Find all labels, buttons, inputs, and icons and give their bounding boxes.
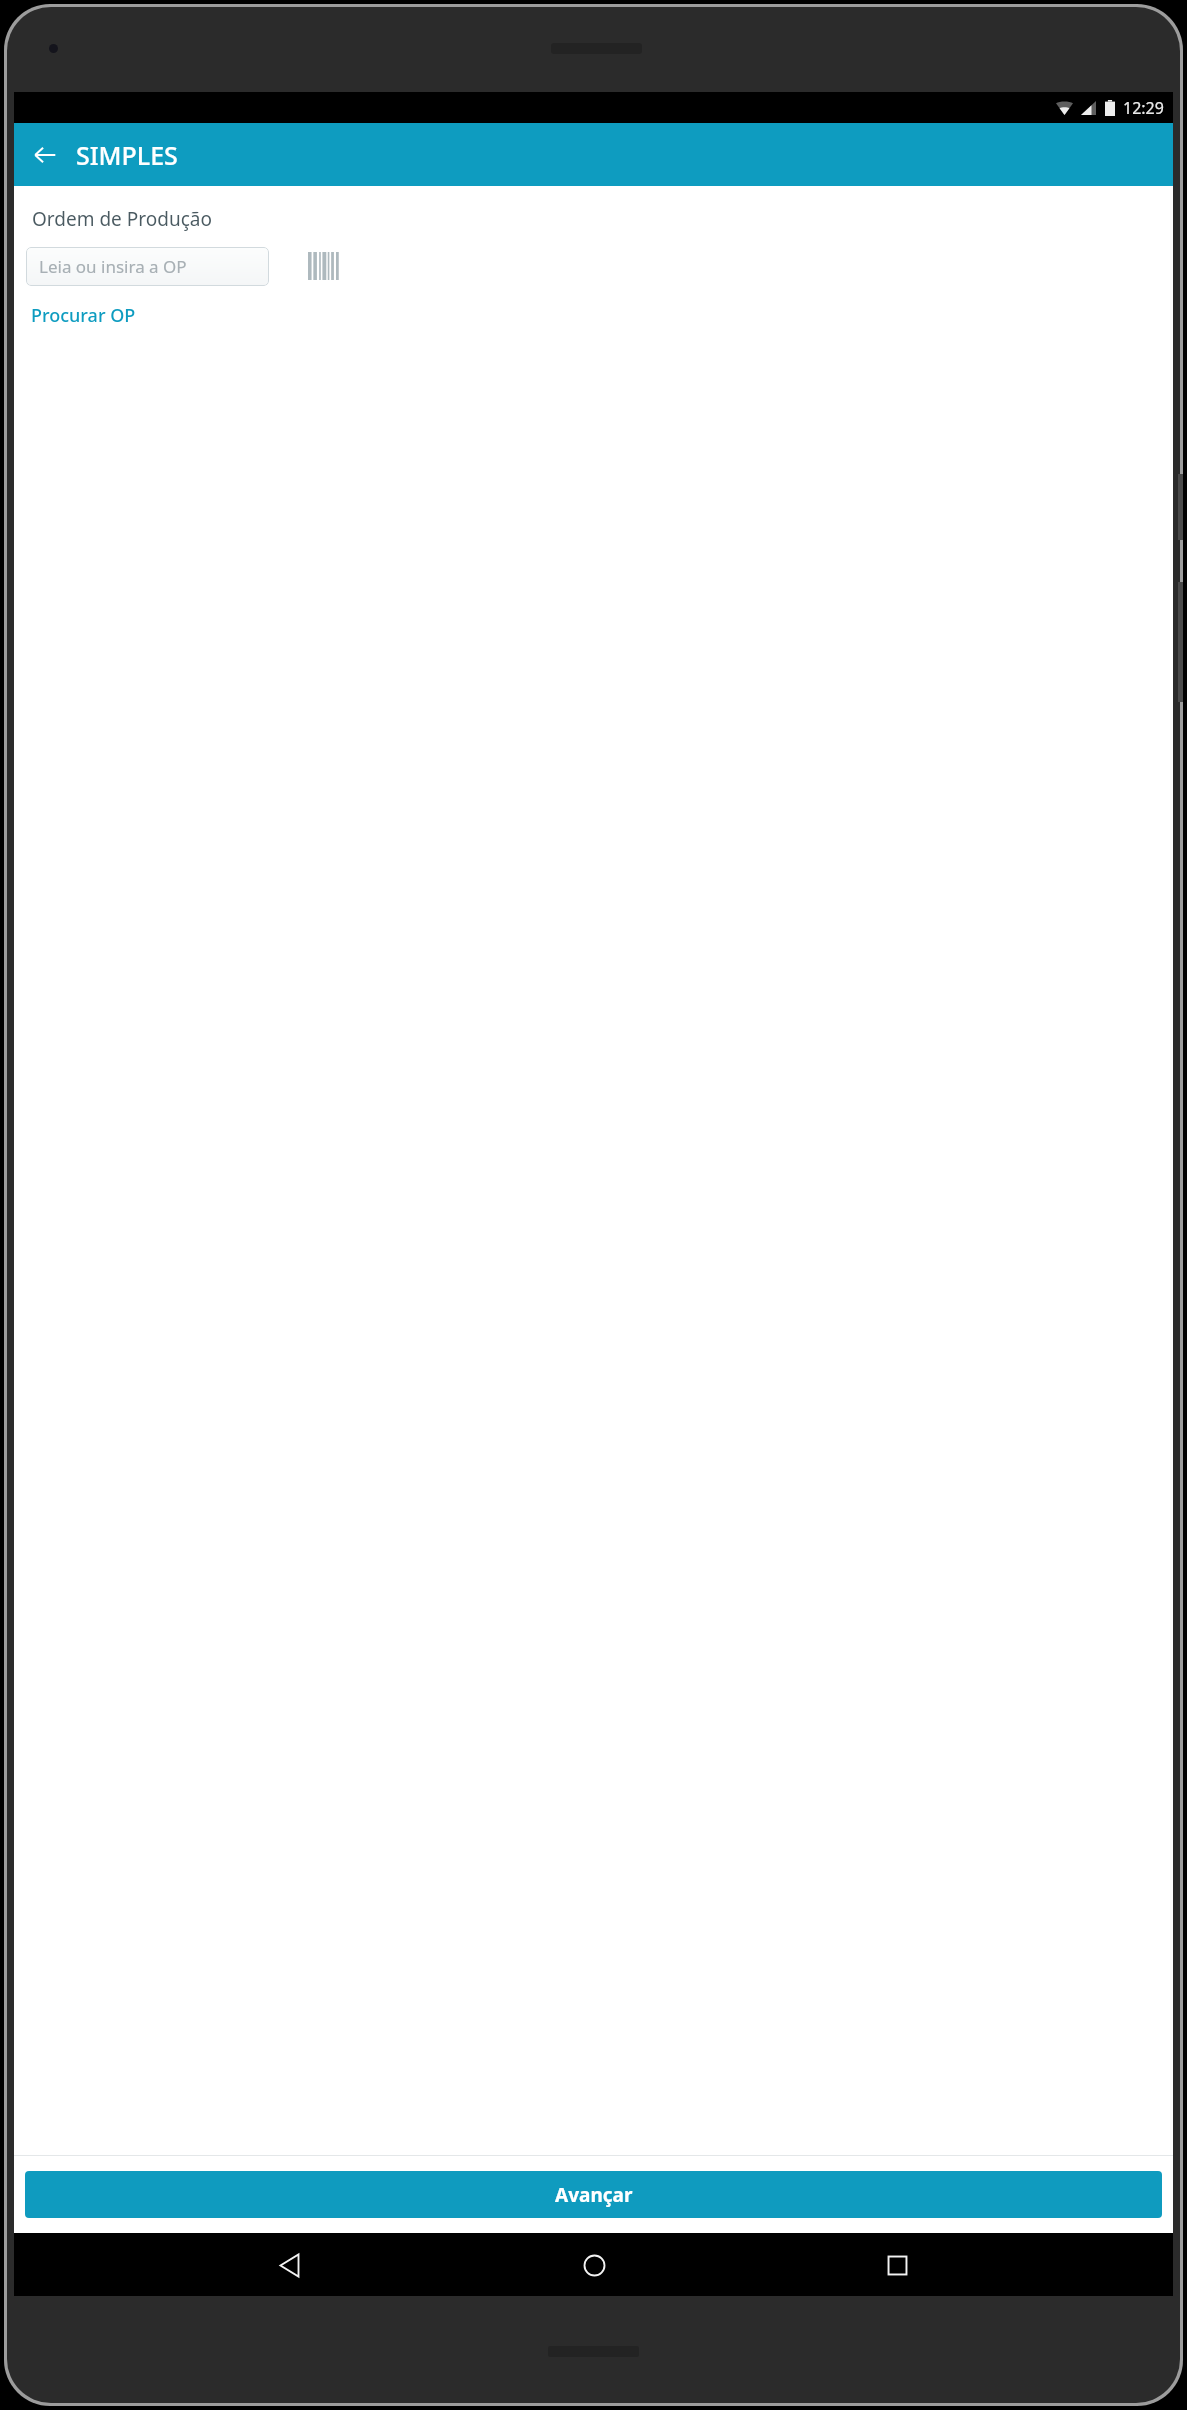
button[interactable]: Back <box>262 2237 318 2293</box>
staticText: Avançar <box>555 2182 633 2208</box>
staticText: Ordem de Produção <box>32 206 212 232</box>
button[interactable]: Voltar <box>22 132 68 178</box>
button[interactable]: Leia ou insira a OP <box>26 247 269 286</box>
button[interactable]: Avançar <box>25 2171 1162 2218</box>
button[interactable]: Procurar OP <box>28 300 139 331</box>
staticText: SIMPLES <box>76 138 178 172</box>
staticText: Leia ou insira a OP <box>39 255 187 278</box>
button[interactable]: Recent apps <box>869 2237 925 2293</box>
button[interactable]: Home <box>566 2237 622 2293</box>
button[interactable]: Ler código de barras <box>303 244 347 288</box>
staticText: 12:29 <box>1123 97 1164 119</box>
staticText: Procurar OP <box>31 303 136 328</box>
